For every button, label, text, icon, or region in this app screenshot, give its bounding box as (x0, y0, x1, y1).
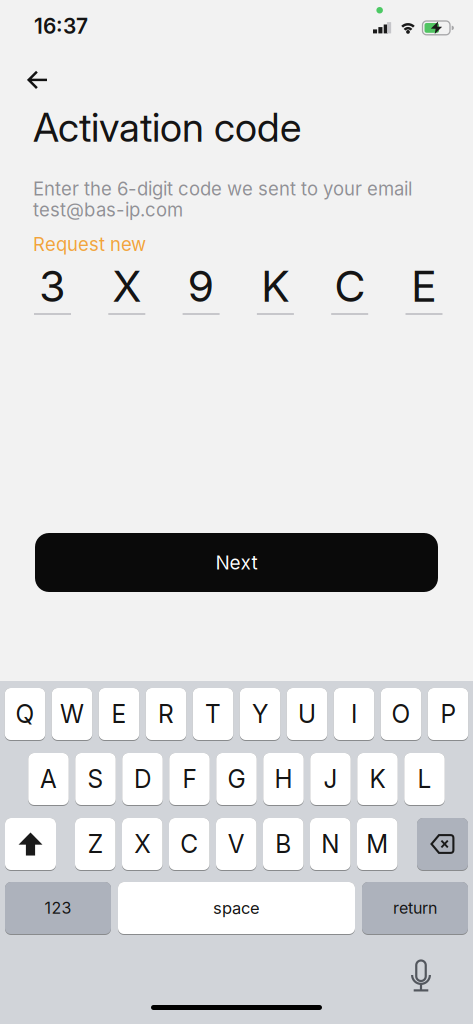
button[interactable] (5, 818, 56, 871)
button[interactable]: P (428, 688, 468, 741)
button[interactable]: K (357, 753, 398, 806)
button[interactable]: D (122, 753, 163, 806)
staticText: N (321, 829, 339, 859)
staticText: K (261, 260, 290, 312)
button[interactable]: X (122, 818, 162, 871)
staticText: L (417, 764, 431, 794)
staticText: 16:37 (34, 13, 88, 39)
button[interactable] (17, 63, 57, 97)
staticText: Enter the 6-digit code we sent to your e… (33, 177, 412, 200)
staticText: 9 (188, 260, 215, 312)
button[interactable]: Z (75, 818, 115, 871)
button[interactable]: U (287, 688, 327, 741)
staticText: A (40, 764, 57, 794)
staticText: F (182, 764, 196, 794)
staticText: 3 (39, 260, 66, 312)
button[interactable]: Next (35, 533, 438, 592)
button[interactable]: S (75, 753, 116, 806)
button[interactable]: R (146, 688, 186, 741)
button[interactable]: B (263, 818, 303, 871)
staticText: C (180, 829, 198, 859)
button[interactable]: space (118, 882, 355, 935)
staticText: V (228, 829, 245, 859)
button[interactable]: O (381, 688, 421, 741)
staticText: Activation code (33, 103, 301, 151)
button[interactable]: W (52, 688, 92, 741)
button[interactable]: return (362, 882, 468, 935)
staticText: P (440, 699, 455, 729)
button[interactable]: E (99, 688, 139, 741)
staticText: H (274, 764, 292, 794)
staticText: space (213, 898, 260, 918)
staticText: X (134, 829, 150, 859)
staticText: T (205, 699, 221, 729)
button[interactable]: V (216, 818, 256, 871)
button[interactable]: N (310, 818, 350, 871)
button[interactable]: Q (5, 688, 45, 741)
staticText: I (351, 699, 357, 729)
staticText: U (298, 699, 316, 729)
button[interactable] (410, 960, 431, 993)
staticText: E (411, 260, 437, 312)
staticText: 123 (44, 898, 71, 918)
staticText: Request new (33, 233, 146, 255)
button[interactable]: H (263, 753, 304, 806)
staticText: test@bas-ip.com (33, 198, 183, 221)
staticText: Q (15, 699, 34, 729)
staticText: E (111, 699, 126, 729)
staticText: K (369, 764, 385, 794)
button[interactable]: I (334, 688, 374, 741)
staticText: J (323, 764, 337, 794)
staticText: G (227, 764, 245, 794)
button[interactable]: L (404, 753, 445, 806)
button[interactable]: F (169, 753, 210, 806)
button[interactable]: J (310, 753, 351, 806)
staticText: R (158, 699, 174, 729)
staticText: return (393, 898, 437, 918)
staticText: O (391, 699, 410, 729)
button[interactable]: Y (240, 688, 280, 741)
staticText: M (366, 829, 388, 859)
staticText: X (112, 260, 141, 312)
button[interactable]: A (28, 753, 69, 806)
button[interactable]: C (169, 818, 209, 871)
staticText: Z (88, 829, 103, 859)
button[interactable]: 123 (5, 882, 111, 935)
staticText: S (87, 764, 103, 794)
staticText: W (60, 699, 84, 729)
staticText: Y (252, 699, 268, 729)
staticText: B (275, 829, 291, 859)
button[interactable]: M (357, 818, 397, 871)
staticText: C (334, 260, 365, 312)
button[interactable]: T (193, 688, 233, 741)
button[interactable]: Request new (33, 233, 146, 255)
staticText: D (134, 764, 151, 794)
staticText: Next (215, 551, 257, 574)
button[interactable]: G (216, 753, 257, 806)
button[interactable] (417, 818, 468, 871)
